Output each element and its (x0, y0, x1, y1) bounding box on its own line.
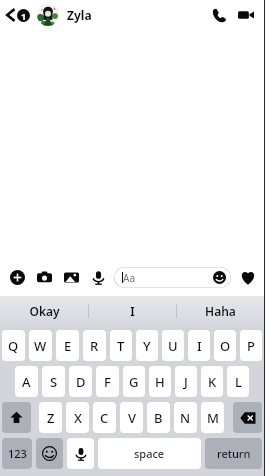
staticText: return (217, 446, 251, 461)
button[interactable]: Shift (2, 402, 31, 433)
staticText: S (50, 373, 58, 391)
button[interactable]: D (69, 366, 92, 397)
staticText: I (197, 337, 202, 355)
staticText: Z (47, 409, 55, 427)
button[interactable]: B (147, 402, 170, 433)
staticText: W (34, 337, 47, 355)
button[interactable]: O (214, 330, 236, 361)
staticText: Y (143, 337, 151, 355)
button[interactable]: Call (207, 3, 231, 27)
button[interactable]: U (162, 330, 184, 361)
staticText: O (220, 337, 231, 355)
staticText: P (247, 337, 255, 355)
staticText: U (168, 337, 178, 355)
button[interactable]: Haha (177, 296, 264, 326)
button[interactable]: V (120, 402, 143, 433)
staticText: 1 (21, 10, 27, 22)
button[interactable]: Voice message (89, 268, 107, 286)
button[interactable]: P (240, 330, 262, 361)
button[interactable]: L (227, 366, 249, 397)
staticText: C (100, 409, 109, 427)
staticText: E (64, 337, 72, 355)
button[interactable]: Back, 1 unread (4, 8, 32, 22)
staticText: 123 (8, 446, 27, 461)
button[interactable]: Okay (0, 296, 88, 326)
button[interactable]: Video call (234, 3, 258, 27)
staticText: X (74, 409, 82, 427)
staticText: space (134, 446, 165, 461)
button[interactable]: I (89, 296, 176, 326)
button[interactable]: H (149, 366, 171, 397)
button[interactable]: Add (8, 268, 26, 286)
staticText: H (155, 373, 165, 391)
staticText: G (129, 373, 139, 391)
staticText: J (184, 373, 188, 391)
button[interactable]: Emoji keyboard (36, 438, 63, 469)
button[interactable]: Numbers (2, 438, 32, 469)
staticText: M (207, 409, 219, 427)
button[interactable]: A (15, 366, 38, 397)
staticText: V (128, 409, 136, 427)
staticText: R (90, 337, 99, 355)
button[interactable]: F (96, 366, 119, 397)
staticText: I (130, 303, 135, 319)
button[interactable]: Dictation (67, 438, 94, 469)
button[interactable] (37, 4, 59, 26)
button[interactable]: N (174, 402, 197, 433)
button[interactable]: R (83, 330, 106, 361)
staticText: L (235, 373, 242, 391)
button[interactable]: space (98, 438, 201, 469)
button[interactable]: Send like (238, 267, 258, 287)
button[interactable]: Aa (114, 267, 231, 288)
button[interactable]: X (66, 402, 89, 433)
staticText: A (22, 373, 31, 391)
staticText: F (104, 373, 111, 391)
button[interactable]: E (56, 330, 79, 361)
button[interactable]: I (188, 330, 210, 361)
staticText: Q (8, 337, 19, 355)
staticText: Okay (29, 303, 60, 319)
button[interactable]: T (110, 330, 132, 361)
button[interactable]: Y (136, 330, 158, 361)
button[interactable]: J (175, 366, 197, 397)
button[interactable]: C (93, 402, 116, 433)
button[interactable]: W (29, 330, 52, 361)
button[interactable]: Backspace (233, 402, 262, 433)
staticText: N (180, 409, 191, 427)
button[interactable]: Emoji (213, 271, 226, 284)
staticText: D (76, 373, 86, 391)
staticText: T (117, 337, 125, 355)
button[interactable]: G (123, 366, 145, 397)
button[interactable]: return (205, 438, 262, 469)
staticText: Zyla (67, 7, 92, 23)
staticText: K (208, 373, 217, 391)
button[interactable]: Z (39, 402, 62, 433)
staticText: Aa (123, 271, 135, 285)
button[interactable]: Camera (35, 268, 53, 286)
button[interactable]: Q (2, 330, 25, 361)
button[interactable]: Photos (62, 268, 80, 286)
button[interactable]: S (42, 366, 65, 397)
staticText: B (154, 409, 163, 427)
staticText: Haha (205, 303, 236, 319)
button[interactable]: K (201, 366, 223, 397)
button[interactable]: M (201, 402, 224, 433)
